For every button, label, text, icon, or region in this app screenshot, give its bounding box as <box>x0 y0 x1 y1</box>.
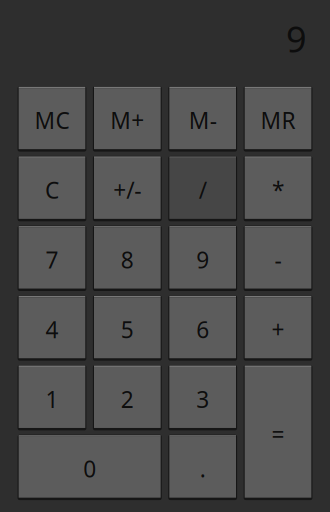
staticText: 1 <box>45 384 58 414</box>
button[interactable]: / <box>168 156 237 221</box>
button[interactable]: 4 <box>18 295 86 361</box>
staticText: 7 <box>45 245 58 275</box>
staticText: MR <box>260 105 295 135</box>
button[interactable]: 6 <box>168 295 237 361</box>
button[interactable]: + <box>244 295 312 361</box>
button[interactable]: 1 <box>18 365 86 430</box>
button[interactable]: 8 <box>93 226 162 291</box>
staticText: 0 <box>83 454 96 484</box>
staticText: 4 <box>45 314 58 344</box>
staticText: / <box>199 175 207 205</box>
staticText: 9 <box>286 15 307 62</box>
button[interactable]: 5 <box>93 295 162 361</box>
button[interactable]: C <box>18 156 86 221</box>
staticText: * <box>272 175 284 205</box>
staticText: 9 <box>196 245 209 275</box>
staticText: 8 <box>121 245 134 275</box>
button[interactable]: = <box>244 365 312 500</box>
staticText: 6 <box>196 314 209 344</box>
staticText: C <box>45 175 59 205</box>
staticText: 3 <box>196 384 209 414</box>
button[interactable]: MR <box>244 86 312 152</box>
staticText: + <box>271 314 284 344</box>
staticText: MC <box>34 105 69 135</box>
staticText: 2 <box>121 384 134 414</box>
staticText: +/- <box>113 175 141 205</box>
staticText: . <box>200 454 206 484</box>
button[interactable]: 2 <box>93 365 162 430</box>
staticText: - <box>274 245 281 275</box>
button[interactable]: M+ <box>93 86 162 152</box>
button[interactable]: +/- <box>93 156 162 221</box>
button[interactable]: - <box>244 226 312 291</box>
button[interactable]: 0 <box>18 435 162 500</box>
staticText: 5 <box>121 314 134 344</box>
button[interactable]: 3 <box>168 365 237 430</box>
button[interactable]: . <box>168 435 237 500</box>
button[interactable]: 9 <box>168 226 237 291</box>
button[interactable]: * <box>244 156 312 221</box>
button[interactable]: M- <box>168 86 237 152</box>
button[interactable]: MC <box>18 86 86 152</box>
staticText: = <box>271 419 284 449</box>
staticText: M+ <box>110 105 144 135</box>
staticText: M- <box>189 105 217 135</box>
button[interactable]: 7 <box>18 226 86 291</box>
